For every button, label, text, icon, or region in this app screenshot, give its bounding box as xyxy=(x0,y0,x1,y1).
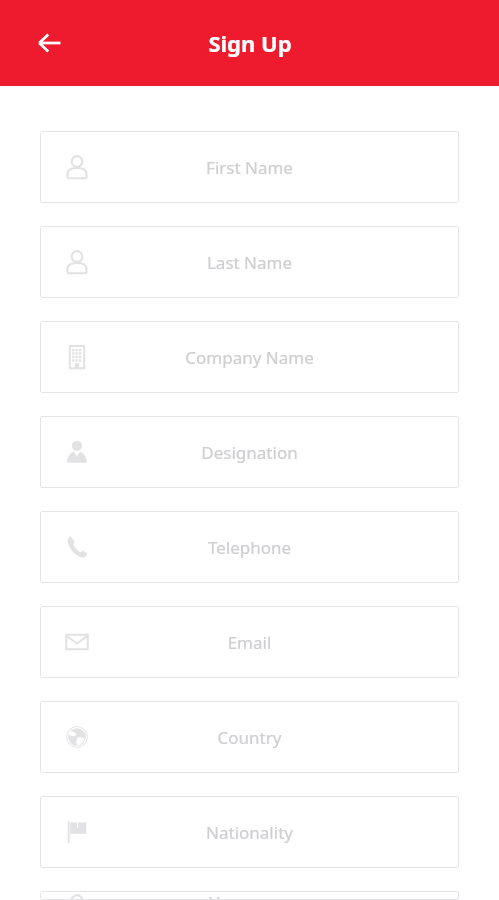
button[interactable]: First Name xyxy=(40,131,459,203)
button[interactable]: Designation xyxy=(40,416,459,488)
button[interactable]: Email xyxy=(40,606,459,678)
button[interactable]: Username xyxy=(40,891,459,900)
button[interactable]: Nationality xyxy=(40,796,459,868)
staticText: Email xyxy=(40,631,459,654)
button[interactable]: Telephone xyxy=(40,511,459,583)
staticText: Telephone xyxy=(40,536,459,559)
staticText: Country xyxy=(40,726,459,749)
button[interactable]: Country xyxy=(40,701,459,773)
staticText: Company Name xyxy=(40,346,459,369)
staticText: First Name xyxy=(40,156,459,179)
staticText: Last Name xyxy=(40,251,459,274)
button[interactable]: Company Name xyxy=(40,321,459,393)
staticText: Nationality xyxy=(40,821,459,844)
staticText: Designation xyxy=(40,441,459,464)
staticText: Sign Up xyxy=(208,28,292,58)
button[interactable]: Back xyxy=(22,15,78,71)
button[interactable]: Last Name xyxy=(40,226,459,298)
staticText: Username xyxy=(40,891,459,900)
